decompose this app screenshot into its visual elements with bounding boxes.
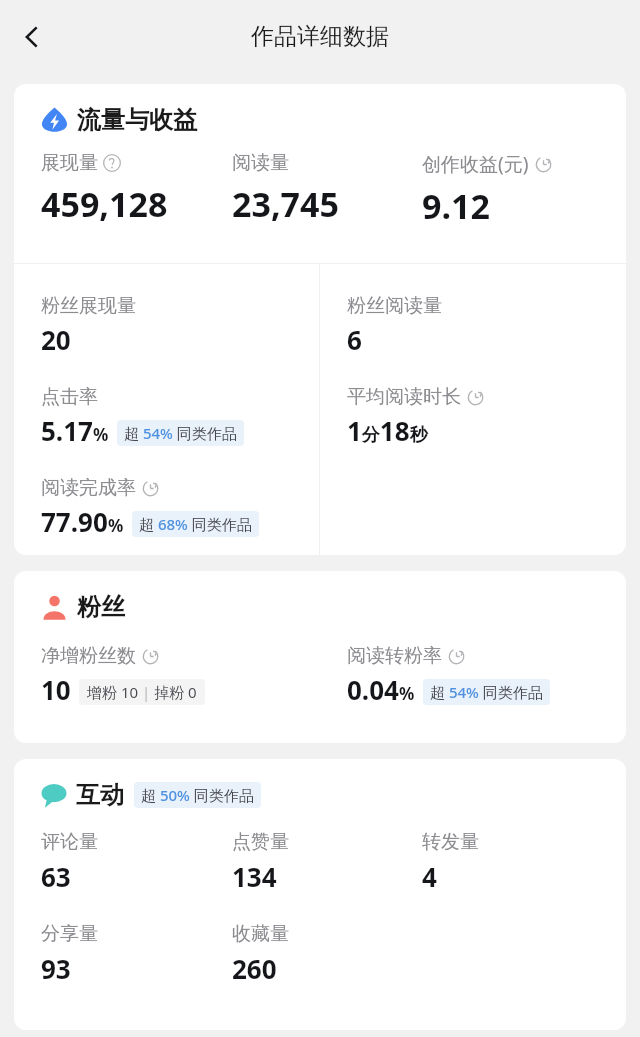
staticText: 20 [41,322,71,357]
button[interactable]: 平均阅读时长 [347,385,485,448]
staticText: 9.12 [422,183,490,229]
staticText: 粉丝展现量 [41,294,136,318]
button[interactable]: Back [8,13,56,61]
staticText: % [399,682,415,705]
staticText: % [108,514,124,537]
staticText: 超 50% 同类作品 [141,785,254,805]
staticText: 4 [422,859,437,894]
staticText: 260 [232,951,277,986]
staticText: 增粉 10 | 掉粉 0 [87,682,197,702]
staticText: 转发量 [422,830,479,854]
staticText: 点赞量 [232,830,289,854]
staticText: 459,128 [41,181,168,227]
staticText: 超 54% 同类作品 [124,423,237,443]
button[interactable]: 超 54% 同类作品 [423,679,550,705]
button[interactable]: 转发量 [422,830,612,894]
button[interactable]: 创作收益(元) [422,151,612,229]
staticText: 77.90 [41,504,108,539]
button[interactable]: 超 68% 同类作品 [132,511,259,537]
staticText: 63 [41,859,71,894]
staticText: 0.04 [347,672,399,707]
staticText: 收藏量 [232,922,289,946]
button[interactable]: 粉丝展现量 [41,294,136,357]
staticText: 展现量 [41,151,98,175]
staticText: 阅读转粉率 [347,644,442,668]
staticText: 10 [41,672,71,707]
staticText: 流量与收益 [77,105,197,135]
staticText: 平均阅读时长 [347,385,461,409]
staticText: 阅读量 [232,151,289,175]
staticText: 6 [347,322,362,357]
button[interactable]: 展现量 [41,151,232,227]
button[interactable]: 评论量 [41,830,232,894]
staticText: 作品详细数据 [251,22,389,51]
button[interactable]: 阅读量 [232,151,422,227]
button[interactable]: 分享量 [41,922,232,986]
button[interactable]: 净增粉丝数 [41,644,320,707]
button[interactable]: 超 54% 同类作品 [117,420,244,446]
staticText: 粉丝 [77,592,125,622]
staticText: 阅读完成率 [41,476,136,500]
staticText: 超 68% 同类作品 [139,514,252,534]
staticText: 分享量 [41,922,98,946]
staticText: 创作收益(元) [422,151,529,177]
button[interactable]: 点赞量 [232,830,422,894]
button[interactable]: 超 50% 同类作品 [134,782,261,808]
staticText: 粉丝阅读量 [347,294,442,318]
staticText: % [93,423,109,446]
staticText: 93 [41,951,71,986]
staticText: 1分18秒 [347,413,428,448]
button[interactable]: 阅读转粉率 [347,644,626,707]
staticText: 互动 [76,780,124,810]
button[interactable]: 点击率 [41,385,244,448]
staticText: 超 54% 同类作品 [430,682,543,702]
staticText: 点击率 [41,385,98,409]
staticText: 评论量 [41,830,98,854]
staticText: 5.17 [41,413,93,448]
button[interactable]: 收藏量 [232,922,422,986]
button[interactable]: 阅读完成率 [41,476,259,539]
staticText: 净增粉丝数 [41,644,136,668]
button[interactable]: 粉丝阅读量 [347,294,442,357]
staticText: 23,745 [232,181,339,227]
staticText: 134 [232,859,277,894]
